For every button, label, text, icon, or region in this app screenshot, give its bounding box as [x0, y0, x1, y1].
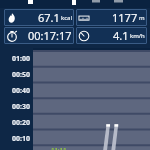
staticText: 00:10 — [12, 134, 30, 144]
other: RULER — [78, 12, 90, 24]
staticText: 67.1 — [38, 10, 60, 25]
button[interactable]: FLAME — [4, 9, 74, 26]
staticText: kcal — [61, 14, 72, 22]
staticText: 11:11 — [51, 146, 67, 150]
staticText: 00:20 — [12, 118, 30, 128]
button[interactable]: 11:11 — [33, 48, 150, 150]
staticText: m — [139, 14, 145, 22]
staticText: km/h — [130, 32, 145, 40]
other: SPEED — [78, 30, 90, 42]
button[interactable]: SPEED — [76, 27, 147, 44]
other: FLAME — [6, 12, 18, 24]
staticText: 01:00 — [12, 54, 30, 64]
staticText: 00:50 — [12, 70, 30, 80]
button[interactable]: STOPWATCH — [4, 27, 74, 44]
staticText: 00:30 — [12, 102, 30, 112]
staticText: 00:17:17 — [28, 28, 72, 43]
staticText: 1177 — [112, 10, 138, 25]
button[interactable]: RULER — [76, 9, 147, 26]
staticText: 00:40 — [12, 86, 30, 96]
other: STOPWATCH — [6, 30, 18, 42]
staticText: 4.1 — [113, 28, 129, 43]
